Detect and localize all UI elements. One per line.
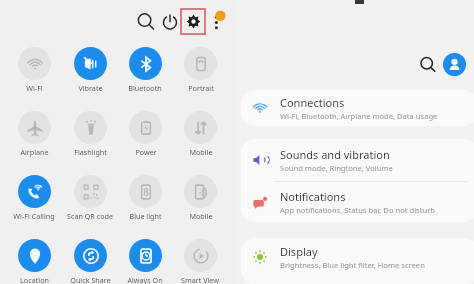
- staticText: Sound mode, Ringtone, Volume: [280, 163, 393, 173]
- staticText: Airplane mode: [20, 147, 49, 157]
- staticText: Wi-Fi, Bluetooth, Airplane mode, Data us…: [280, 111, 438, 121]
- staticText: Power mode: [135, 147, 157, 157]
- staticText: Smart View: [181, 275, 219, 284]
- button[interactable]: Notifications: [241, 182, 474, 222]
- staticText: Wi-Fi: [26, 83, 43, 93]
- button[interactable]: Quick Share: [63, 239, 117, 284]
- staticText: Quick Share: [70, 275, 111, 284]
- button[interactable]: Location: [7, 239, 61, 284]
- button[interactable]: Flashlight: [63, 111, 117, 157]
- button[interactable]: Account: [443, 53, 466, 76]
- staticText: Location: [20, 275, 49, 284]
- button[interactable]: Smart View: [173, 239, 227, 284]
- staticText: Bluetooth: [128, 83, 162, 93]
- button[interactable]: Bluetooth: [118, 47, 172, 93]
- staticText: Sounds and vibration: [280, 147, 390, 162]
- button[interactable]: Mobile Hotspot: [173, 175, 227, 221]
- staticText: Scan QR code: [67, 211, 113, 221]
- staticText: Notifications: [280, 189, 346, 204]
- staticText: Brightness, Blue light filter, Home scre…: [280, 260, 425, 270]
- staticText: Wi-Fi Calling: [13, 211, 55, 221]
- button[interactable]: Blue light filter: [118, 175, 172, 221]
- button[interactable]: Search settings: [417, 54, 439, 76]
- button[interactable]: Portrait: [173, 47, 227, 93]
- button[interactable]: Power off: [158, 10, 182, 34]
- button[interactable]: Airplane mode: [7, 111, 61, 157]
- staticText: App notifications, Status bar, Do not di…: [280, 205, 435, 215]
- button[interactable]: Mobile data: [173, 111, 227, 157]
- button[interactable]: Connections: [241, 90, 474, 126]
- button[interactable]: Scan QR code: [63, 175, 117, 221]
- button[interactable]: Wi-Fi: [7, 47, 61, 93]
- staticText: Vibrate: [78, 83, 103, 93]
- staticText: Flashlight: [74, 147, 107, 157]
- staticText: Portrait: [188, 83, 214, 93]
- button[interactable]: Search: [134, 10, 158, 34]
- button[interactable]: More options: [208, 10, 228, 34]
- button[interactable]: Display: [241, 238, 474, 276]
- staticText: Blue light filter: [129, 211, 162, 221]
- staticText: Mobile Hotspot: [187, 211, 215, 221]
- staticText: Always On: [127, 275, 163, 284]
- button[interactable]: Wi-Fi Calling: [7, 175, 61, 221]
- button[interactable]: Power mode: [118, 111, 172, 157]
- button[interactable]: Vibrate: [63, 47, 117, 93]
- staticText: Connections: [280, 95, 345, 110]
- staticText: Mobile data: [189, 147, 213, 157]
- button[interactable]: Always On: [118, 239, 172, 284]
- staticText: Display: [280, 244, 318, 259]
- button[interactable]: Settings: [181, 9, 205, 34]
- button[interactable]: Sounds and vibration: [241, 139, 474, 181]
